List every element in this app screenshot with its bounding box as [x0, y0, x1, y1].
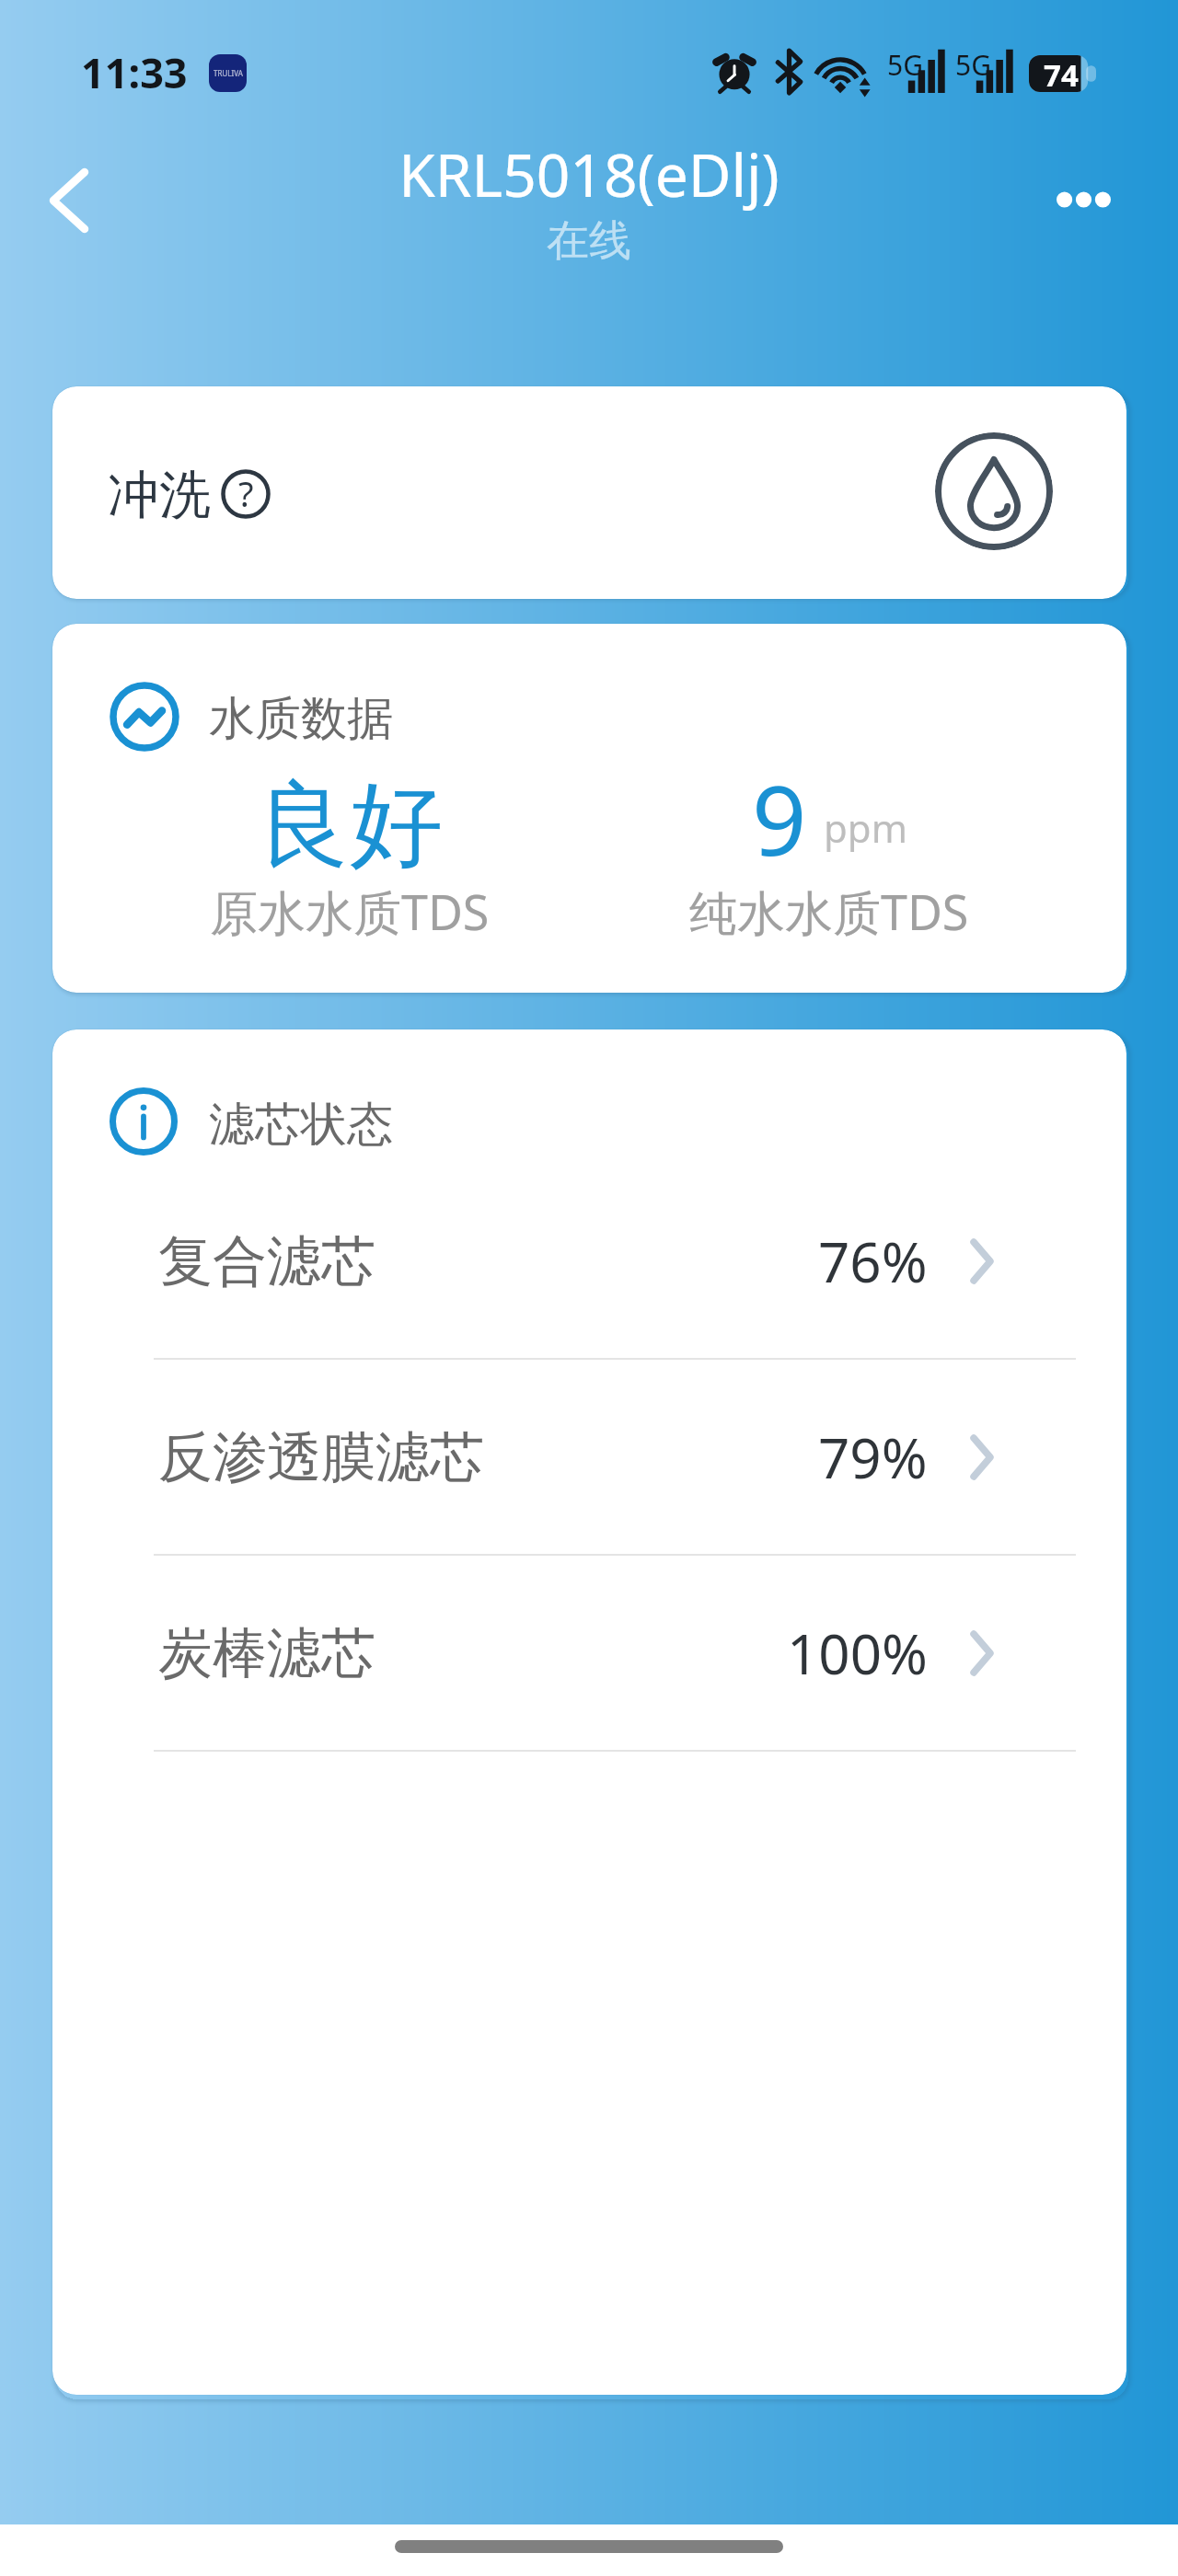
staticText: 复合滤芯: [158, 1227, 375, 1295]
staticText: 滤芯状态: [209, 1096, 393, 1154]
button[interactable]: 炭棒滤芯: [154, 1556, 1076, 1752]
staticText: 水质数据: [209, 690, 393, 748]
staticText: 在线: [0, 214, 1178, 268]
staticText: 5G: [955, 46, 991, 84]
button[interactable]: 反渗透膜滤芯: [154, 1360, 1076, 1556]
button[interactable]: 复合滤芯: [154, 1164, 1076, 1360]
button[interactable]: Start flush: [935, 432, 1053, 550]
staticText: 9: [752, 753, 807, 884]
staticText: 纯水水质TDS: [689, 879, 969, 944]
staticText: 反渗透膜滤芯: [158, 1423, 484, 1491]
staticText: 炭棒滤芯: [158, 1619, 375, 1687]
button[interactable]: Help: [221, 469, 271, 519]
staticText: ?: [238, 469, 254, 517]
staticText: 原水水质TDS: [210, 879, 490, 944]
staticText: 76%: [818, 1224, 928, 1299]
button[interactable]: Back: [23, 155, 115, 247]
staticText: 74: [1044, 54, 1079, 91]
staticText: 79%: [818, 1420, 928, 1495]
staticText: 100%: [787, 1616, 928, 1691]
staticText: TRULIVA: [214, 68, 243, 78]
button[interactable]: More options: [1037, 154, 1129, 246]
staticText: 良好: [257, 767, 443, 884]
staticText: KRL5018(eDlj): [0, 134, 1178, 214]
staticText: 5G: [887, 46, 923, 84]
staticText: ppm: [824, 801, 907, 854]
staticText: 11:33: [81, 44, 188, 100]
staticText: 冲洗: [108, 463, 211, 528]
button[interactable]: 冲洗: [52, 386, 1126, 599]
